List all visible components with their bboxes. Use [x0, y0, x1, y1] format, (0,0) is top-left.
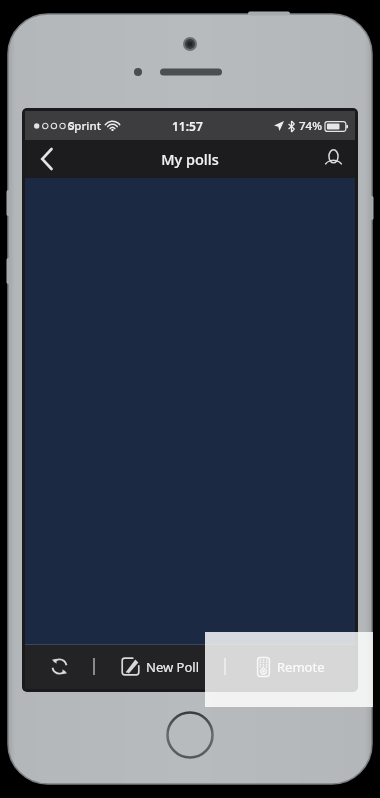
staticText: 11:57	[172, 118, 203, 134]
button[interactable]: Refresh	[25, 644, 93, 689]
staticText: Sprint	[68, 118, 102, 134]
staticText: New Poll	[146, 658, 199, 676]
button[interactable]: Remote	[226, 644, 355, 689]
button[interactable]: Back	[25, 140, 69, 178]
staticText: Remote	[277, 658, 325, 676]
button[interactable]: Profile	[311, 140, 355, 178]
staticText: My polls	[161, 149, 219, 169]
staticText: 74%	[299, 118, 322, 134]
button[interactable]: New Poll	[95, 644, 224, 689]
